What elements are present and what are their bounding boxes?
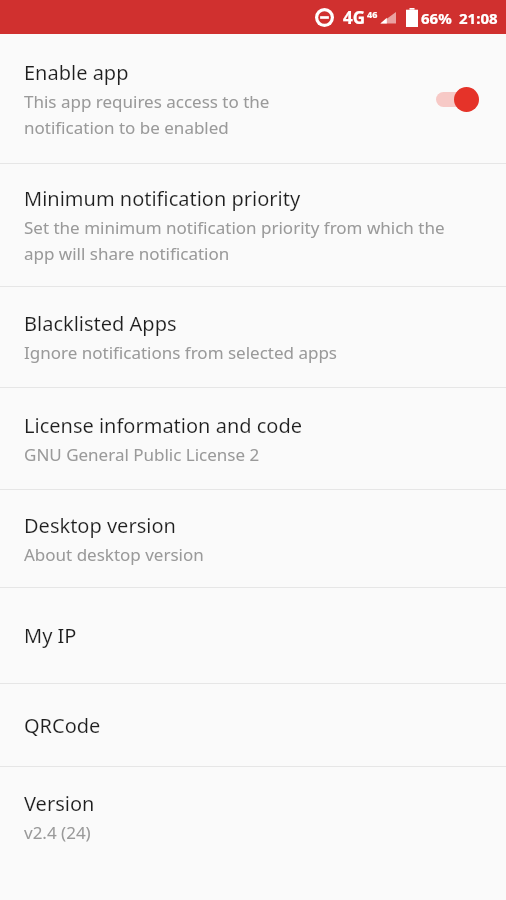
staticText: Version xyxy=(24,790,95,817)
staticText: About desktop version xyxy=(24,543,204,566)
button[interactable]: Minimum notification priority xyxy=(0,164,506,286)
button[interactable]: QRCode xyxy=(0,684,506,766)
staticText: Blacklisted Apps xyxy=(24,310,177,337)
button[interactable]: Version xyxy=(0,767,506,867)
button[interactable]: Desktop version xyxy=(0,490,506,587)
staticText: This app requires access to the notifica… xyxy=(24,90,270,139)
staticText: 21:08 xyxy=(459,8,498,28)
staticText: QRCode xyxy=(24,712,101,739)
button[interactable]: My IP xyxy=(0,588,506,683)
staticText: License information and code xyxy=(24,412,303,439)
staticText: Ignore notifications from selected apps xyxy=(24,341,338,364)
staticText: Set the minimum notification priority fr… xyxy=(24,216,445,265)
button[interactable]: Enable app toggle xyxy=(432,82,488,116)
button[interactable]: Blacklisted Apps xyxy=(0,287,506,387)
staticText: My IP xyxy=(24,622,77,649)
staticText: v2.4 (24) xyxy=(24,821,91,844)
staticText: 4G xyxy=(343,6,366,29)
staticText: Desktop version xyxy=(24,512,176,539)
button[interactable]: Enable app xyxy=(0,34,506,163)
staticText: Minimum notification priority xyxy=(24,185,301,212)
staticText: 66% xyxy=(421,8,452,28)
staticText: 46 xyxy=(367,8,378,20)
staticText: Enable app xyxy=(24,59,129,86)
button[interactable]: License information and code xyxy=(0,388,506,489)
staticText: GNU General Public License 2 xyxy=(24,443,260,466)
